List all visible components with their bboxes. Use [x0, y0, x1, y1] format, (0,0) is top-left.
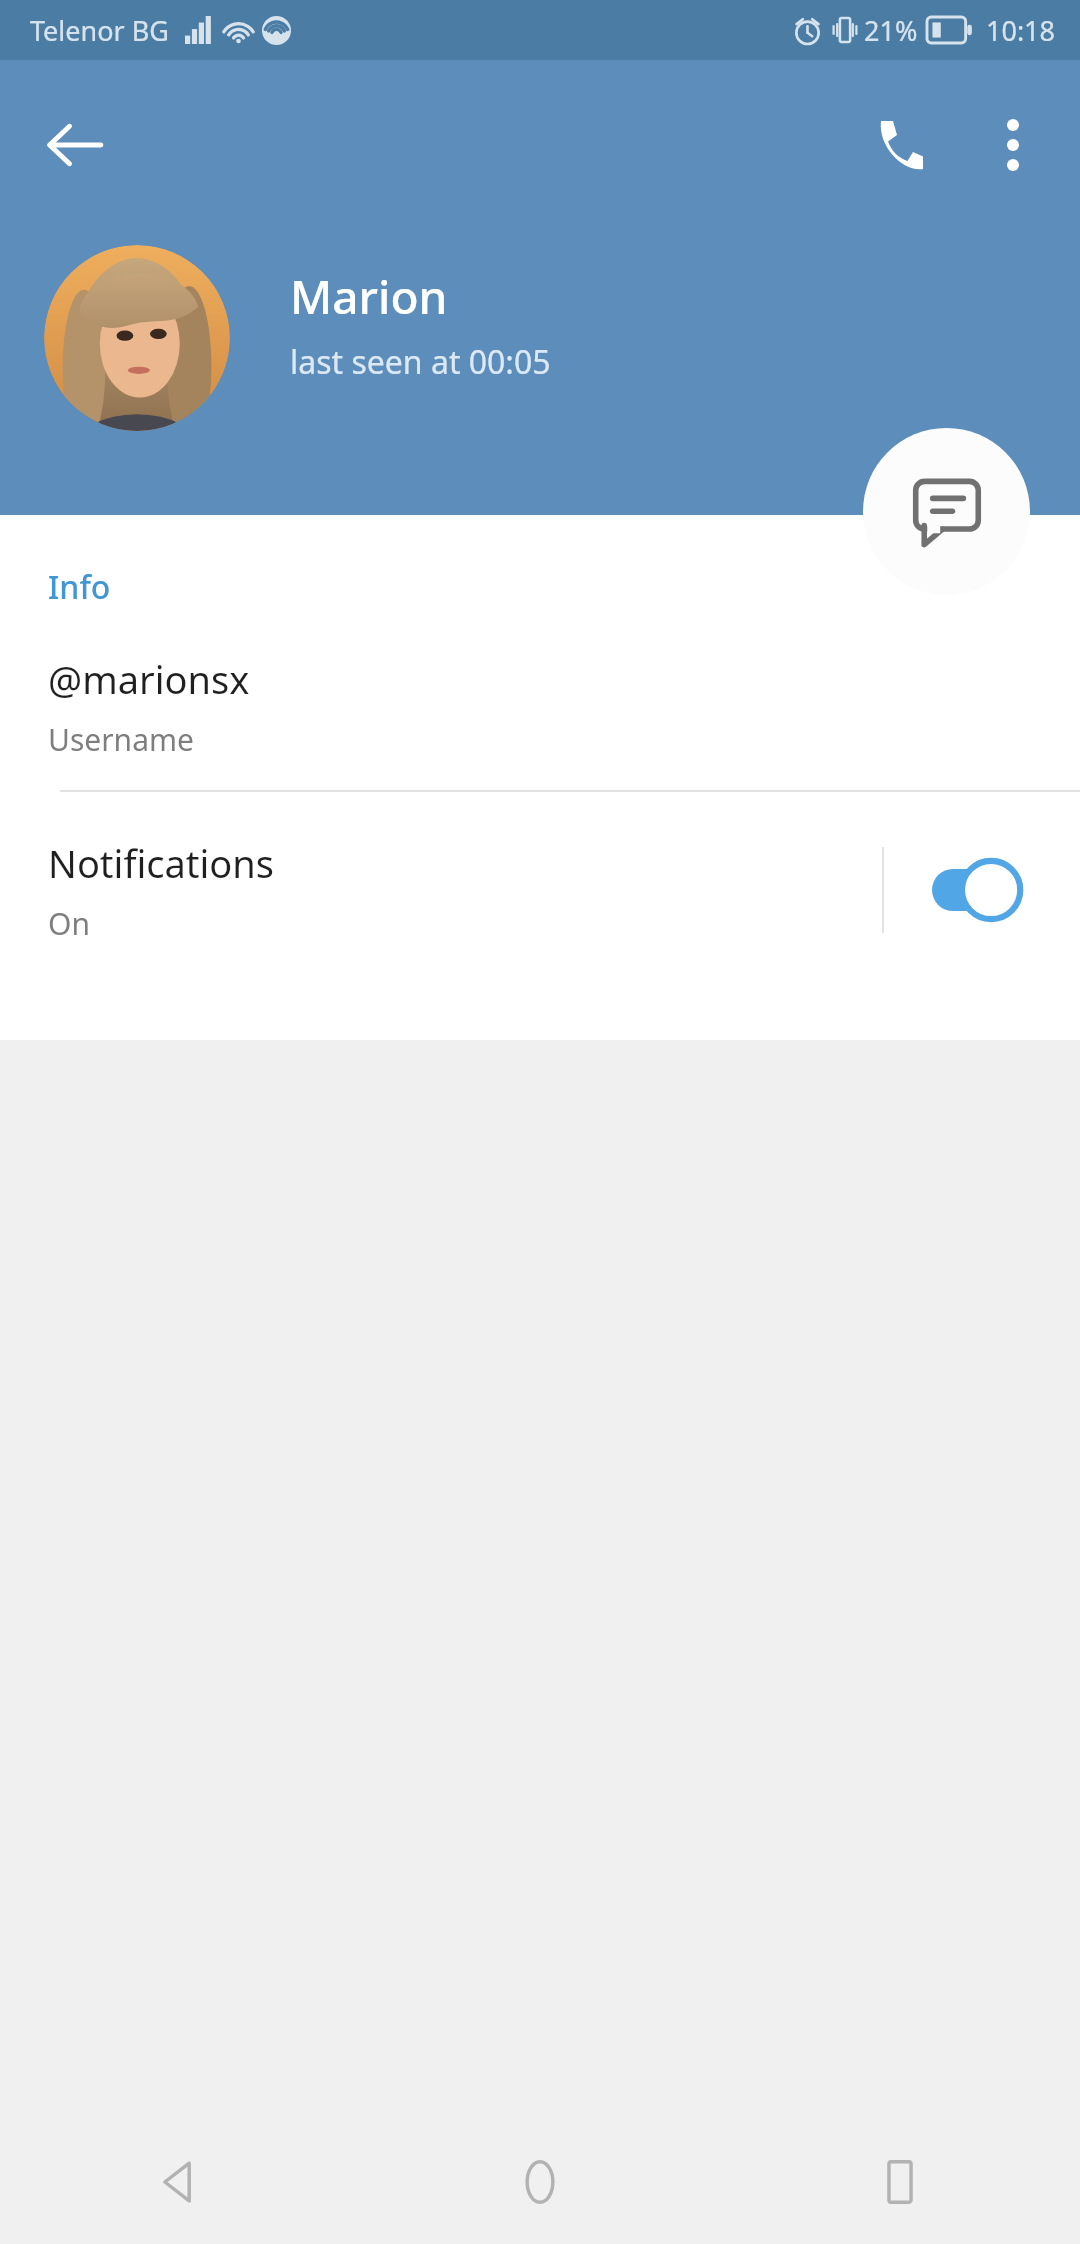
button[interactable]: @marionsx: [0, 653, 1080, 790]
staticText: Telenor BG: [30, 12, 169, 49]
staticText: Info: [48, 565, 111, 609]
staticText: 21%: [864, 12, 918, 49]
staticText: last seen at 00:05: [290, 340, 551, 384]
button[interactable]: Profile photo: [44, 245, 230, 431]
staticText: Username: [48, 719, 194, 760]
button[interactable]: Call: [838, 85, 958, 205]
button[interactable]: Back: [14, 85, 134, 205]
staticText: 10:18: [986, 12, 1056, 49]
button[interactable]: Notifications toggle: [932, 859, 1036, 921]
button[interactable]: Home: [360, 2120, 720, 2244]
button[interactable]: Recents: [720, 2120, 1080, 2244]
button[interactable]: Notifications: [0, 792, 1080, 988]
staticText: @marionsx: [48, 653, 250, 705]
button[interactable]: Back: [0, 2120, 360, 2244]
button[interactable]: Send message: [863, 428, 1030, 595]
staticText: Notifications: [48, 837, 275, 889]
button[interactable]: More options: [958, 90, 1068, 200]
staticText: Marion: [290, 265, 448, 328]
staticText: On: [48, 903, 90, 944]
